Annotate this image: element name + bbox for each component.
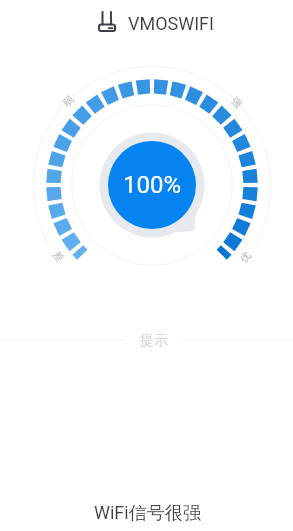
staticText: 100%: [123, 171, 182, 199]
staticText: 差: [50, 248, 67, 264]
staticText: 优: [237, 249, 254, 265]
staticText: 提示: [140, 332, 168, 348]
staticText: 弱: [60, 93, 76, 109]
other: Router: [98, 12, 116, 32]
staticText: VMOSWIFI: [128, 13, 214, 34]
staticText: 强: [228, 94, 245, 110]
staticText: WiFi信号很强: [94, 502, 201, 525]
button[interactable]: Router: [9, 1, 293, 43]
